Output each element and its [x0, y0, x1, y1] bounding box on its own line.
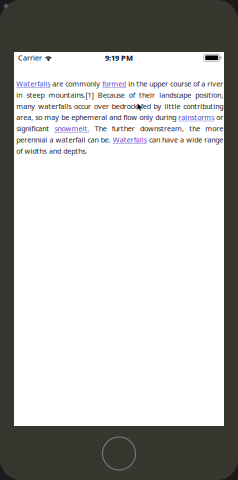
staticText: waterfall — [55, 135, 85, 145]
staticText: wide — [186, 135, 202, 145]
staticText: of — [129, 90, 135, 100]
staticText: have — [162, 135, 178, 145]
staticText: mountains.[1] — [49, 90, 94, 100]
staticText: can — [149, 135, 160, 145]
staticText: may — [44, 112, 59, 122]
button[interactable]: Waterfalls — [16, 79, 50, 89]
staticText: rainstorms — [178, 112, 214, 122]
staticText: occur — [74, 101, 91, 111]
staticText: upper — [149, 79, 168, 89]
staticText: area, — [16, 112, 33, 122]
staticText: 9:19 PM — [105, 53, 133, 63]
staticText: perennial — [16, 135, 47, 145]
staticText: so — [35, 112, 42, 122]
staticText: steep — [26, 90, 44, 100]
staticText: contributing — [183, 101, 223, 111]
staticText: river — [207, 79, 223, 89]
staticText: the — [136, 79, 147, 89]
staticText: more — [205, 124, 223, 133]
staticText: a — [49, 135, 53, 145]
staticText: formed — [102, 79, 126, 89]
staticText: waterfalls — [38, 101, 71, 111]
button[interactable]: rainstorms — [178, 112, 214, 122]
staticText: in — [128, 79, 134, 89]
staticText: a — [201, 79, 205, 89]
staticText: Waterfalls — [113, 135, 147, 145]
staticText: further — [112, 124, 135, 133]
staticText: downstream, — [140, 124, 184, 133]
button[interactable]: formed — [102, 79, 126, 89]
staticText: in — [16, 90, 22, 100]
staticText: can — [88, 135, 99, 145]
staticText: position, — [195, 90, 223, 100]
button[interactable]: Waterfalls — [113, 135, 147, 145]
staticText: and — [109, 112, 121, 122]
staticText: ephemeral — [71, 112, 107, 122]
staticText: be. — [101, 135, 111, 145]
staticText: range — [204, 135, 223, 145]
staticText: flow — [123, 112, 137, 122]
staticText: and — [49, 146, 61, 156]
staticText: during — [155, 112, 176, 122]
staticText: their — [139, 90, 155, 100]
staticText: commonly — [65, 79, 100, 89]
staticText: be — [61, 112, 69, 122]
staticText: landscape — [159, 90, 191, 100]
staticText: Because — [98, 90, 125, 100]
staticText: the — [189, 124, 200, 133]
staticText: The — [95, 124, 107, 133]
staticText: of — [193, 79, 199, 89]
staticText: course — [170, 79, 191, 89]
staticText: are — [52, 79, 63, 89]
staticText: bedrock — [112, 101, 138, 111]
staticText: widths — [25, 146, 47, 156]
staticText: depths. — [63, 146, 87, 156]
staticText: by — [154, 101, 162, 111]
staticText: a — [180, 135, 184, 145]
staticText: or — [216, 112, 223, 122]
staticText: over — [94, 101, 109, 111]
staticText: Carrier — [18, 53, 42, 63]
staticText: fed — [141, 101, 151, 111]
staticText: many — [16, 101, 35, 111]
button[interactable]: snowmelt. — [54, 124, 89, 133]
staticText: only — [139, 112, 153, 122]
staticText: Waterfalls — [16, 79, 50, 89]
staticText: significant — [16, 124, 49, 133]
staticText: little — [164, 101, 180, 111]
staticText: snowmelt. — [54, 124, 89, 133]
staticText: of — [16, 146, 22, 156]
